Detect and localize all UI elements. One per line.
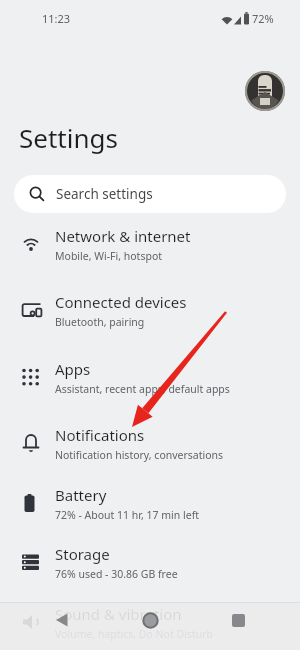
staticText: Mobile, Wi-Fi, hotspot	[55, 249, 163, 263]
staticText: Apps	[55, 359, 91, 379]
staticText: Search settings	[56, 185, 153, 203]
button[interactable]: Apps	[0, 349, 300, 405]
button[interactable]: Notifications	[0, 415, 300, 471]
staticText: Assistant, recent apps, default apps	[55, 382, 230, 396]
staticText: Battery	[55, 485, 107, 505]
button[interactable]: Network & internet	[0, 216, 300, 272]
button[interactable]	[136, 606, 164, 634]
button[interactable]	[224, 606, 252, 634]
staticText: Storage	[55, 544, 110, 564]
button[interactable]: Sound & vibration	[0, 594, 300, 650]
staticText: Notifications	[55, 425, 145, 445]
staticText: Connected devices	[55, 292, 187, 312]
staticText: 76% used - 30.86 GB free	[55, 567, 178, 581]
staticText: Volume, haptics, Do Not Disturb	[55, 627, 213, 641]
button[interactable]: Connected devices	[0, 282, 300, 338]
button[interactable]	[48, 606, 76, 634]
button[interactable]: Battery	[0, 475, 300, 531]
staticText: 11:23	[42, 11, 71, 26]
button[interactable]	[245, 71, 285, 111]
button[interactable]: Search settings	[14, 175, 286, 213]
staticText: Sound & vibration	[55, 604, 182, 624]
staticText: Network & internet	[55, 226, 191, 246]
button[interactable]: Storage	[0, 534, 300, 590]
staticText: Settings	[19, 120, 118, 155]
staticText: 72%	[252, 11, 274, 26]
staticText: Bluetooth, pairing	[55, 315, 145, 329]
staticText: 72% - About 11 hr, 17 min left	[55, 508, 200, 522]
staticText: Notification history, conversations	[55, 448, 224, 462]
